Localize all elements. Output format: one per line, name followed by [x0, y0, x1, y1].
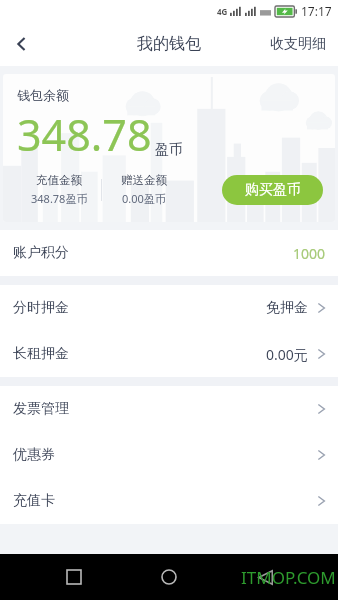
button[interactable]: 充值卡	[0, 478, 338, 524]
staticText: 赠送金额	[121, 173, 167, 187]
staticText: 17:17	[301, 3, 332, 19]
button[interactable]: 购买盈币	[222, 175, 323, 205]
staticText: 收支明细	[270, 35, 326, 53]
button[interactable]: 长租押金	[0, 331, 338, 377]
staticText: 348.78盈币	[31, 191, 88, 206]
staticText: 0.00盈币	[122, 191, 166, 206]
button[interactable]: 发票管理	[0, 386, 338, 432]
staticText: 1000	[293, 244, 326, 263]
button[interactable]: 账户积分	[0, 230, 338, 276]
button[interactable]: Recents	[52, 555, 96, 599]
staticText: 账户积分	[13, 244, 69, 262]
staticText: 分时押金	[13, 299, 69, 317]
staticText: 免押金	[266, 299, 308, 317]
staticText: 盈币	[155, 141, 183, 159]
staticText: 0.00元	[266, 345, 308, 364]
button[interactable]: Home	[147, 555, 191, 599]
staticText: 优惠券	[13, 446, 55, 464]
button[interactable]: 收支明细	[258, 22, 338, 66]
staticText: 发票管理	[13, 400, 69, 418]
staticText: 充值卡	[13, 492, 55, 510]
button[interactable]: Back	[0, 22, 44, 66]
staticText: ITMOP.COM	[241, 566, 336, 589]
button[interactable]: Back	[243, 555, 287, 599]
staticText: 4G	[217, 6, 228, 17]
staticText: 钱包余额	[17, 87, 69, 103]
staticText: 购买盈币	[245, 181, 301, 199]
staticText: 长租押金	[13, 345, 69, 363]
button[interactable]: 优惠券	[0, 432, 338, 478]
staticText: 348.78	[17, 105, 152, 164]
staticText: 充值金额	[36, 173, 82, 187]
staticText: 我的钱包	[137, 34, 201, 54]
button[interactable]: 分时押金	[0, 285, 338, 331]
